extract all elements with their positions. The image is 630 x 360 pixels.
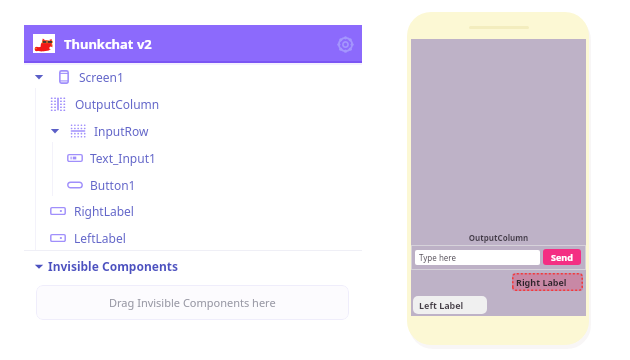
staticText: RightLabel [74,203,134,219]
button[interactable]: Drag Invisible Components here [36,285,349,320]
button[interactable]: Settings [332,31,358,57]
staticText: Drag Invisible Components here [109,295,276,310]
button[interactable]: RightLabel [24,200,362,222]
staticText: Screen1 [79,69,124,85]
staticText: Left Label [419,299,464,311]
staticText: Right Label [516,276,567,288]
button[interactable]: Right Label [512,273,583,291]
staticText: Type here [419,252,456,263]
button[interactable]: Screen1 [24,66,362,88]
staticText: Thunkchat v2 [64,35,152,53]
staticText: OutputColumn [75,96,160,112]
staticText: InputRow [94,123,149,139]
staticText: OutputColumn [411,232,586,243]
button[interactable]: InputRow [24,120,362,142]
staticText: Text_Input1 [90,150,156,166]
button[interactable]: OutputColumn [24,93,362,115]
staticText: Button1 [90,177,136,193]
button[interactable]: Type here [415,250,540,265]
staticText: Send [551,251,573,263]
button[interactable]: LeftLabel [24,227,362,249]
button[interactable]: Left Label [413,296,487,314]
button[interactable]: Text_Input1 [24,147,362,169]
button[interactable]: Send [543,249,581,265]
button[interactable]: Type here [411,245,586,270]
button[interactable]: Button1 [24,174,362,196]
staticText: LeftLabel [74,230,126,246]
button[interactable]: Invisible Components [24,256,362,276]
staticText: Invisible Components [48,258,178,274]
